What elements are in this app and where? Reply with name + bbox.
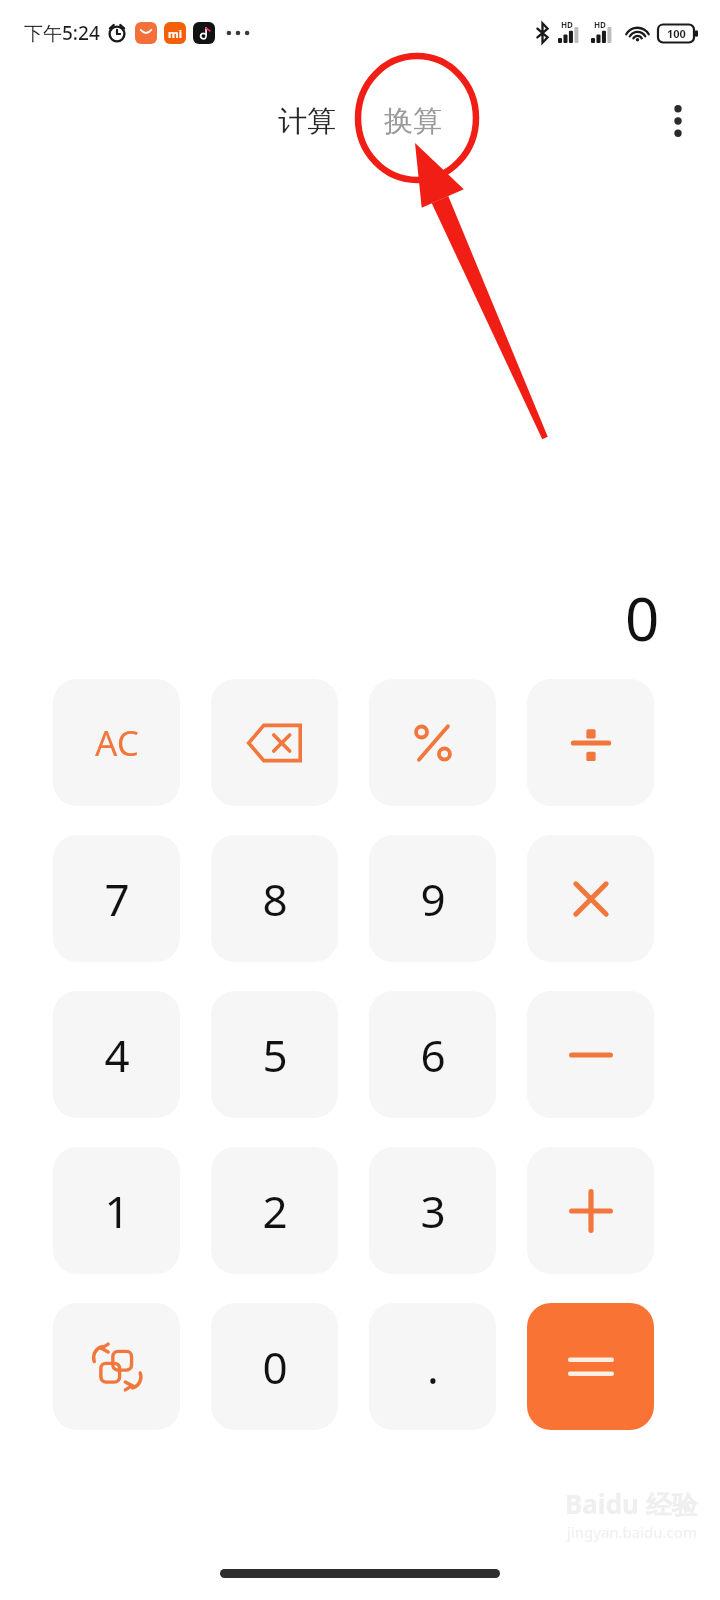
staticText: AC <box>95 719 139 767</box>
staticText: 6 <box>420 1025 446 1085</box>
button[interactable]: Percent <box>369 679 496 806</box>
staticText: 100 <box>667 26 686 41</box>
staticText: HD <box>594 19 606 30</box>
staticText: 4 <box>104 1025 130 1085</box>
button[interactable]: AC <box>53 679 180 806</box>
button[interactable]: 9 <box>369 835 496 962</box>
button[interactable]: . <box>369 1303 496 1430</box>
button[interactable]: 7 <box>53 835 180 962</box>
button[interactable]: More options <box>650 93 706 149</box>
staticText: Baidu 经验 <box>565 1486 698 1522</box>
staticText: mi <box>168 26 183 41</box>
staticText: jingyan.baidu.com <box>567 1522 697 1542</box>
button[interactable]: Divide <box>527 679 654 806</box>
staticText: 换算 <box>384 103 442 140</box>
staticText: 7 <box>104 869 130 929</box>
button[interactable]: 5 <box>211 991 338 1118</box>
staticText: 0 <box>625 577 660 659</box>
button[interactable]: 1 <box>53 1147 180 1274</box>
button[interactable]: 4 <box>53 991 180 1118</box>
button[interactable]: Backspace <box>211 679 338 806</box>
staticText: HD <box>561 19 573 30</box>
button[interactable]: Multiply <box>527 835 654 962</box>
button[interactable]: Unit conversion <box>53 1303 180 1430</box>
staticText: 1 <box>104 1181 130 1241</box>
staticText: 2 <box>262 1181 288 1241</box>
staticText: 9 <box>420 869 446 929</box>
staticText: 下午5:24 <box>24 20 100 46</box>
button[interactable]: 换算 <box>374 97 452 146</box>
button[interactable]: 8 <box>211 835 338 962</box>
button[interactable]: 计算 <box>268 97 346 146</box>
staticText: 0 <box>262 1337 288 1397</box>
button[interactable]: 0 <box>211 1303 338 1430</box>
button[interactable]: Equals <box>527 1303 654 1430</box>
staticText: 3 <box>420 1181 446 1241</box>
button[interactable]: 2 <box>211 1147 338 1274</box>
staticText: 5 <box>262 1025 288 1085</box>
staticText: . <box>427 1337 439 1397</box>
staticText: 计算 <box>278 103 336 140</box>
button[interactable]: Minus <box>527 991 654 1118</box>
button[interactable]: 3 <box>369 1147 496 1274</box>
staticText: 8 <box>262 869 288 929</box>
button[interactable]: 6 <box>369 991 496 1118</box>
button[interactable]: Plus <box>527 1147 654 1274</box>
